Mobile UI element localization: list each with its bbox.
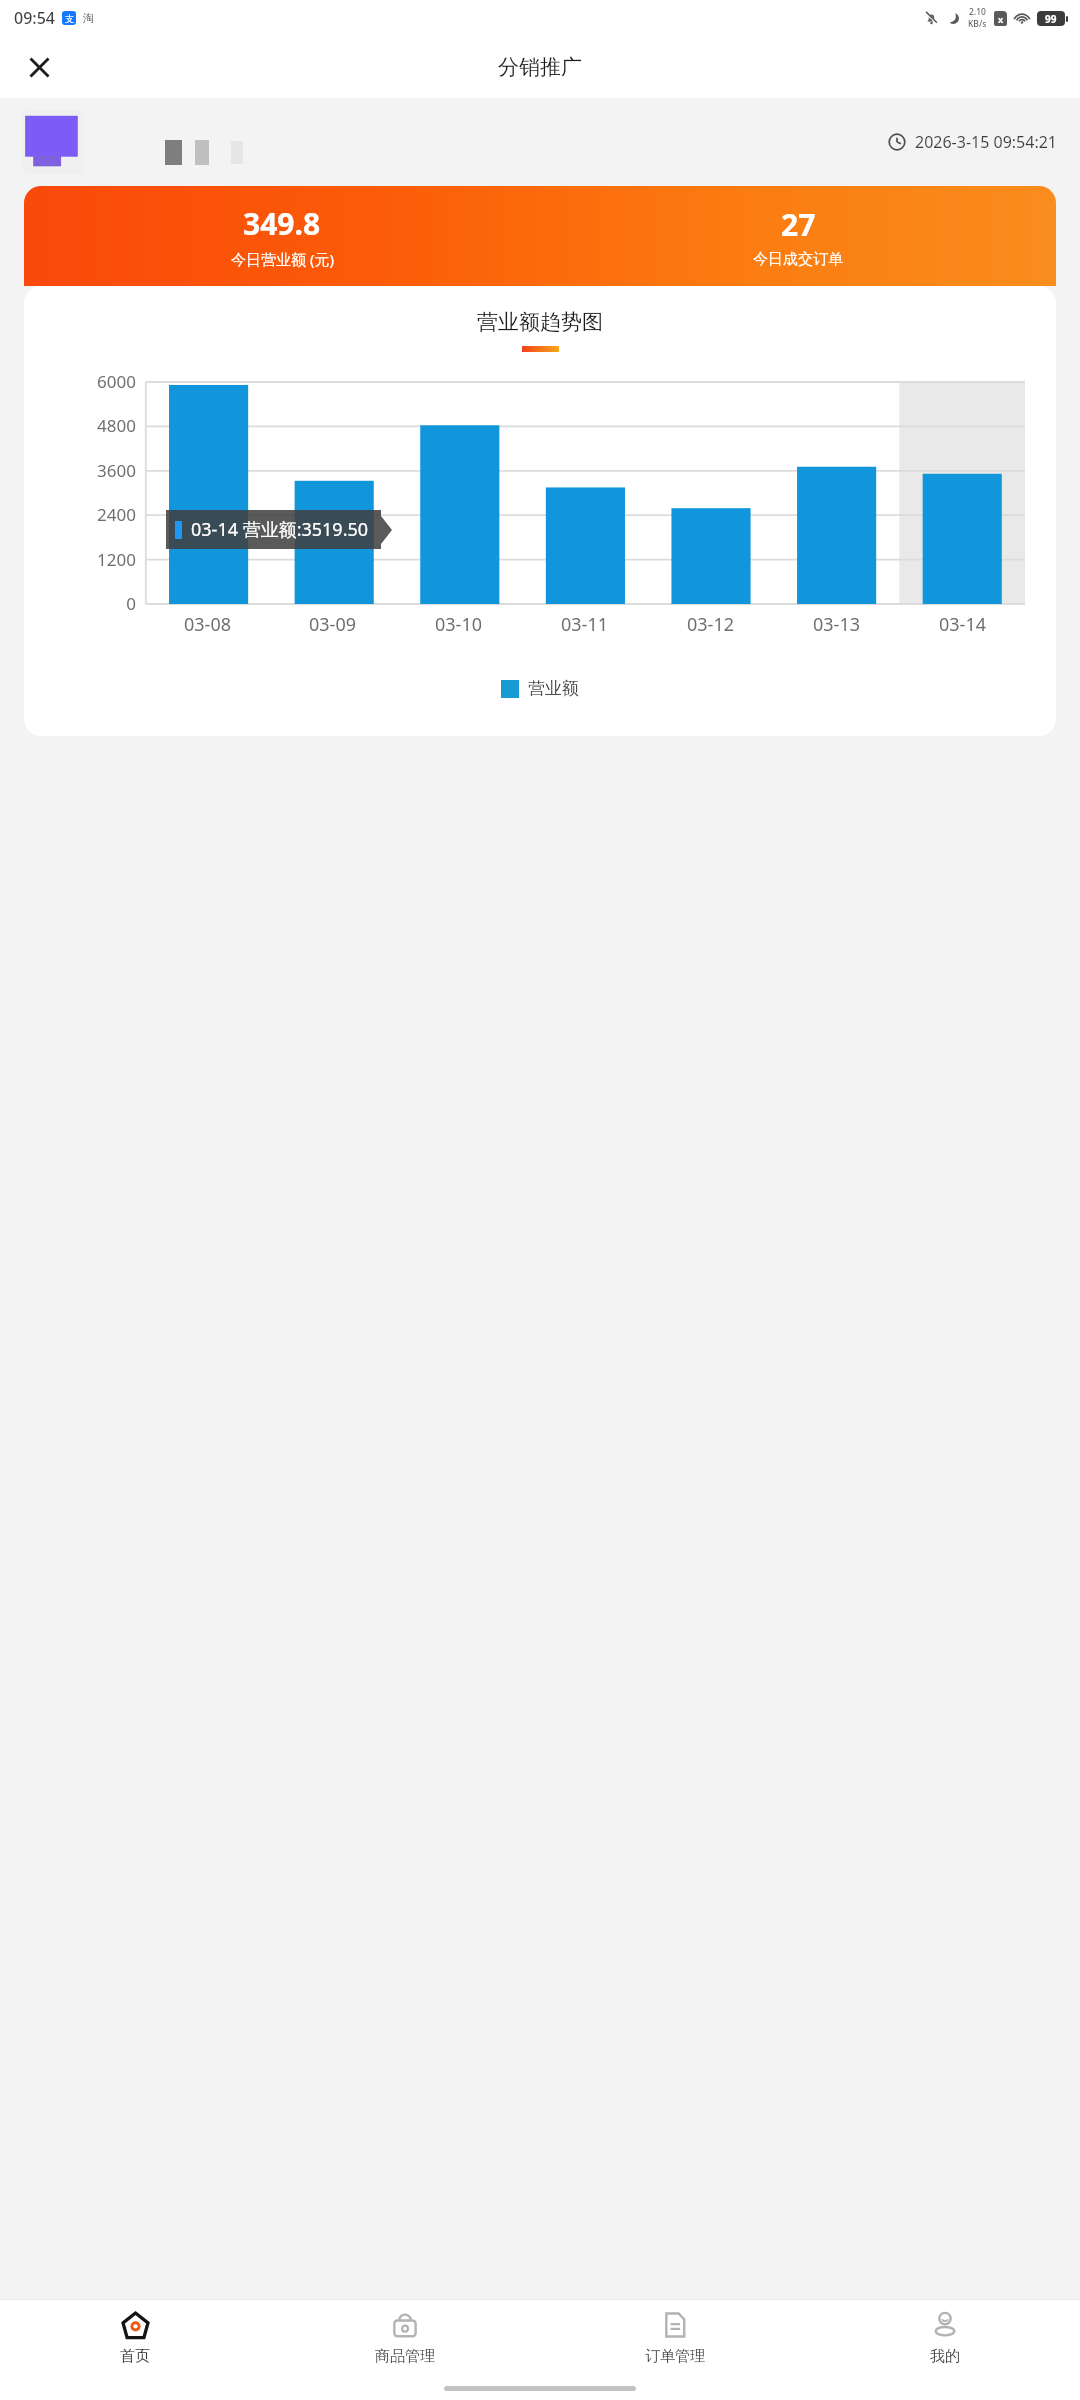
staticText: 2.10 xyxy=(969,6,986,18)
staticText: 商品管理 xyxy=(375,2347,435,2366)
staticText: 03-14 营业额:3519.50 xyxy=(191,517,369,542)
staticText: 今日营业额 (元) xyxy=(231,249,334,269)
staticText: 03-11 xyxy=(561,612,608,637)
staticText: 27 xyxy=(781,204,816,245)
staticText: 03-14 xyxy=(939,612,986,637)
staticText: 1200 xyxy=(24,548,136,571)
staticText: 营业额趋势图 xyxy=(477,309,603,335)
staticText: 营业额 xyxy=(528,678,579,699)
staticText: 首页 xyxy=(120,2347,150,2366)
button[interactable]: 349.8 xyxy=(24,186,1056,286)
staticText: x xyxy=(998,13,1004,25)
staticText: 03-08 xyxy=(184,612,231,637)
staticText: 今日成交订单 xyxy=(753,250,843,269)
staticText: 03-12 xyxy=(687,612,734,637)
staticText: 03-10 xyxy=(435,612,482,637)
staticText: 3600 xyxy=(24,459,136,482)
button[interactable]: 我的 xyxy=(810,2300,1080,2376)
button[interactable]: 商品管理 xyxy=(270,2300,540,2376)
staticText: 03-13 xyxy=(813,612,860,637)
staticText: KB/s xyxy=(968,18,987,30)
button[interactable]: Close xyxy=(14,42,64,92)
staticText: 订单管理 xyxy=(645,2347,705,2366)
staticText: 淘 xyxy=(83,11,94,25)
staticText: 6000 xyxy=(24,370,136,393)
staticText: 99 xyxy=(1045,12,1057,26)
staticText: 支 xyxy=(65,13,74,24)
button[interactable]: 首页 xyxy=(0,2300,270,2376)
staticText: 2400 xyxy=(24,503,136,526)
staticText: 2026-3-15 09:54:21 xyxy=(915,131,1058,153)
staticText: 03-09 xyxy=(309,612,356,637)
staticText: 我的 xyxy=(930,2347,960,2366)
staticText: 4800 xyxy=(24,414,136,437)
staticText: 349.8 xyxy=(243,203,321,244)
staticText: 09:54 xyxy=(14,7,55,29)
button[interactable]: 订单管理 xyxy=(540,2300,810,2376)
staticText: 0 xyxy=(24,592,136,615)
staticText: 分销推广 xyxy=(498,54,582,80)
